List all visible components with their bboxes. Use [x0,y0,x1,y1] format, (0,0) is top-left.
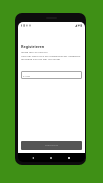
button[interactable]: Registrieren [21,141,82,150]
button[interactable]: Recents [63,153,75,162]
button[interactable]: Back [27,153,39,162]
staticText: E-Mail [23,74,31,77]
button[interactable]: E-Mail [21,71,82,79]
button[interactable]: Home [45,153,57,162]
staticText: Registrieren [21,44,45,49]
staticText: Registrieren [45,144,59,147]
staticText: Und hier steht noch ein Hinweistext der … [21,54,82,61]
staticText: Melde dich an und los! [21,50,48,53]
